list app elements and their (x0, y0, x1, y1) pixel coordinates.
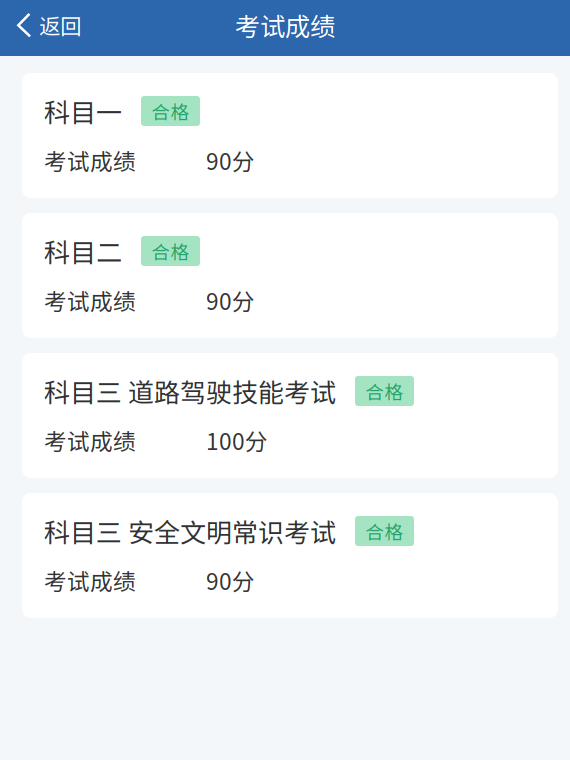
staticText: 90分 (206, 144, 255, 176)
staticText: 考试成绩 (44, 424, 136, 456)
staticText: 科目三 道路驾驶技能考试 (44, 372, 336, 410)
staticText: 合格 (151, 237, 189, 264)
staticText: 科目一 (44, 92, 122, 130)
staticText: 科目三 安全文明常识考试 (44, 512, 336, 550)
staticText: 考试成绩 (44, 564, 136, 596)
staticText: 100分 (206, 424, 268, 456)
button[interactable]: 返回 (0, 0, 95, 50)
staticText: 90分 (206, 564, 255, 596)
staticText: 考试成绩 (44, 284, 136, 316)
staticText: 90分 (206, 284, 255, 316)
staticText: 合格 (365, 377, 403, 404)
staticText: 科目二 (44, 232, 122, 270)
staticText: 合格 (365, 517, 403, 544)
staticText: 考试成绩 (235, 7, 335, 43)
staticText: 返回 (39, 10, 81, 40)
staticText: 合格 (151, 97, 189, 124)
staticText: 考试成绩 (44, 144, 136, 176)
